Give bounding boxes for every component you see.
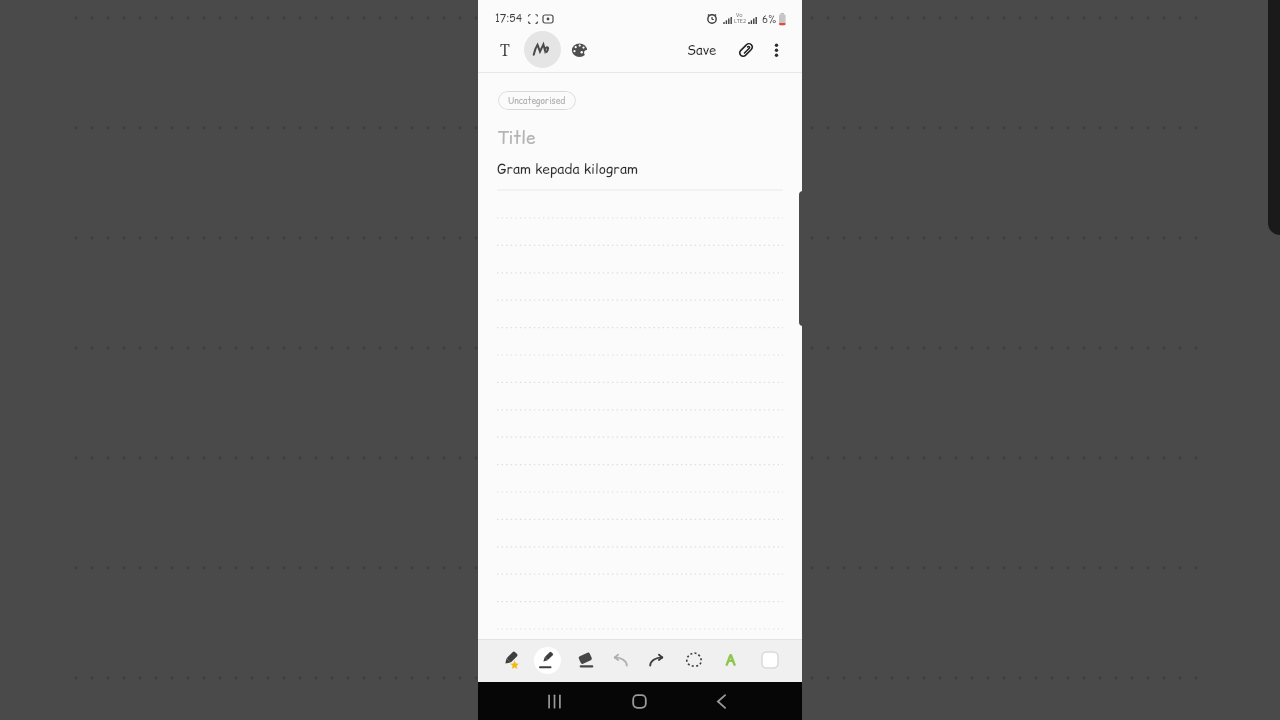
button[interactable] (524, 31, 561, 68)
button[interactable]: Save (674, 36, 729, 64)
button[interactable] (623, 685, 656, 718)
staticText: Gram kepada kilogram (497, 159, 638, 178)
button[interactable] (604, 643, 638, 677)
button[interactable]: T (490, 36, 520, 64)
staticText: Save (687, 41, 717, 59)
button[interactable] (538, 685, 571, 718)
staticText: 6% (762, 12, 777, 26)
staticText: Title (497, 126, 536, 150)
button[interactable] (493, 643, 527, 677)
button[interactable]: Uncategorised (498, 91, 576, 110)
button[interactable] (732, 36, 760, 64)
staticText: T (500, 39, 510, 61)
button[interactable] (530, 643, 564, 677)
button[interactable] (677, 643, 711, 677)
button[interactable] (763, 36, 790, 64)
button[interactable] (568, 643, 602, 677)
staticText: A (725, 649, 737, 671)
staticText: Vo (736, 11, 743, 18)
staticText: 17:54 (495, 11, 523, 26)
button[interactable] (565, 36, 594, 64)
button[interactable] (705, 685, 738, 718)
button[interactable] (639, 643, 673, 677)
button[interactable]: A (714, 643, 748, 677)
button[interactable] (753, 643, 787, 677)
staticText: LTE2 (734, 17, 747, 24)
staticText: Uncategorised (508, 95, 566, 107)
